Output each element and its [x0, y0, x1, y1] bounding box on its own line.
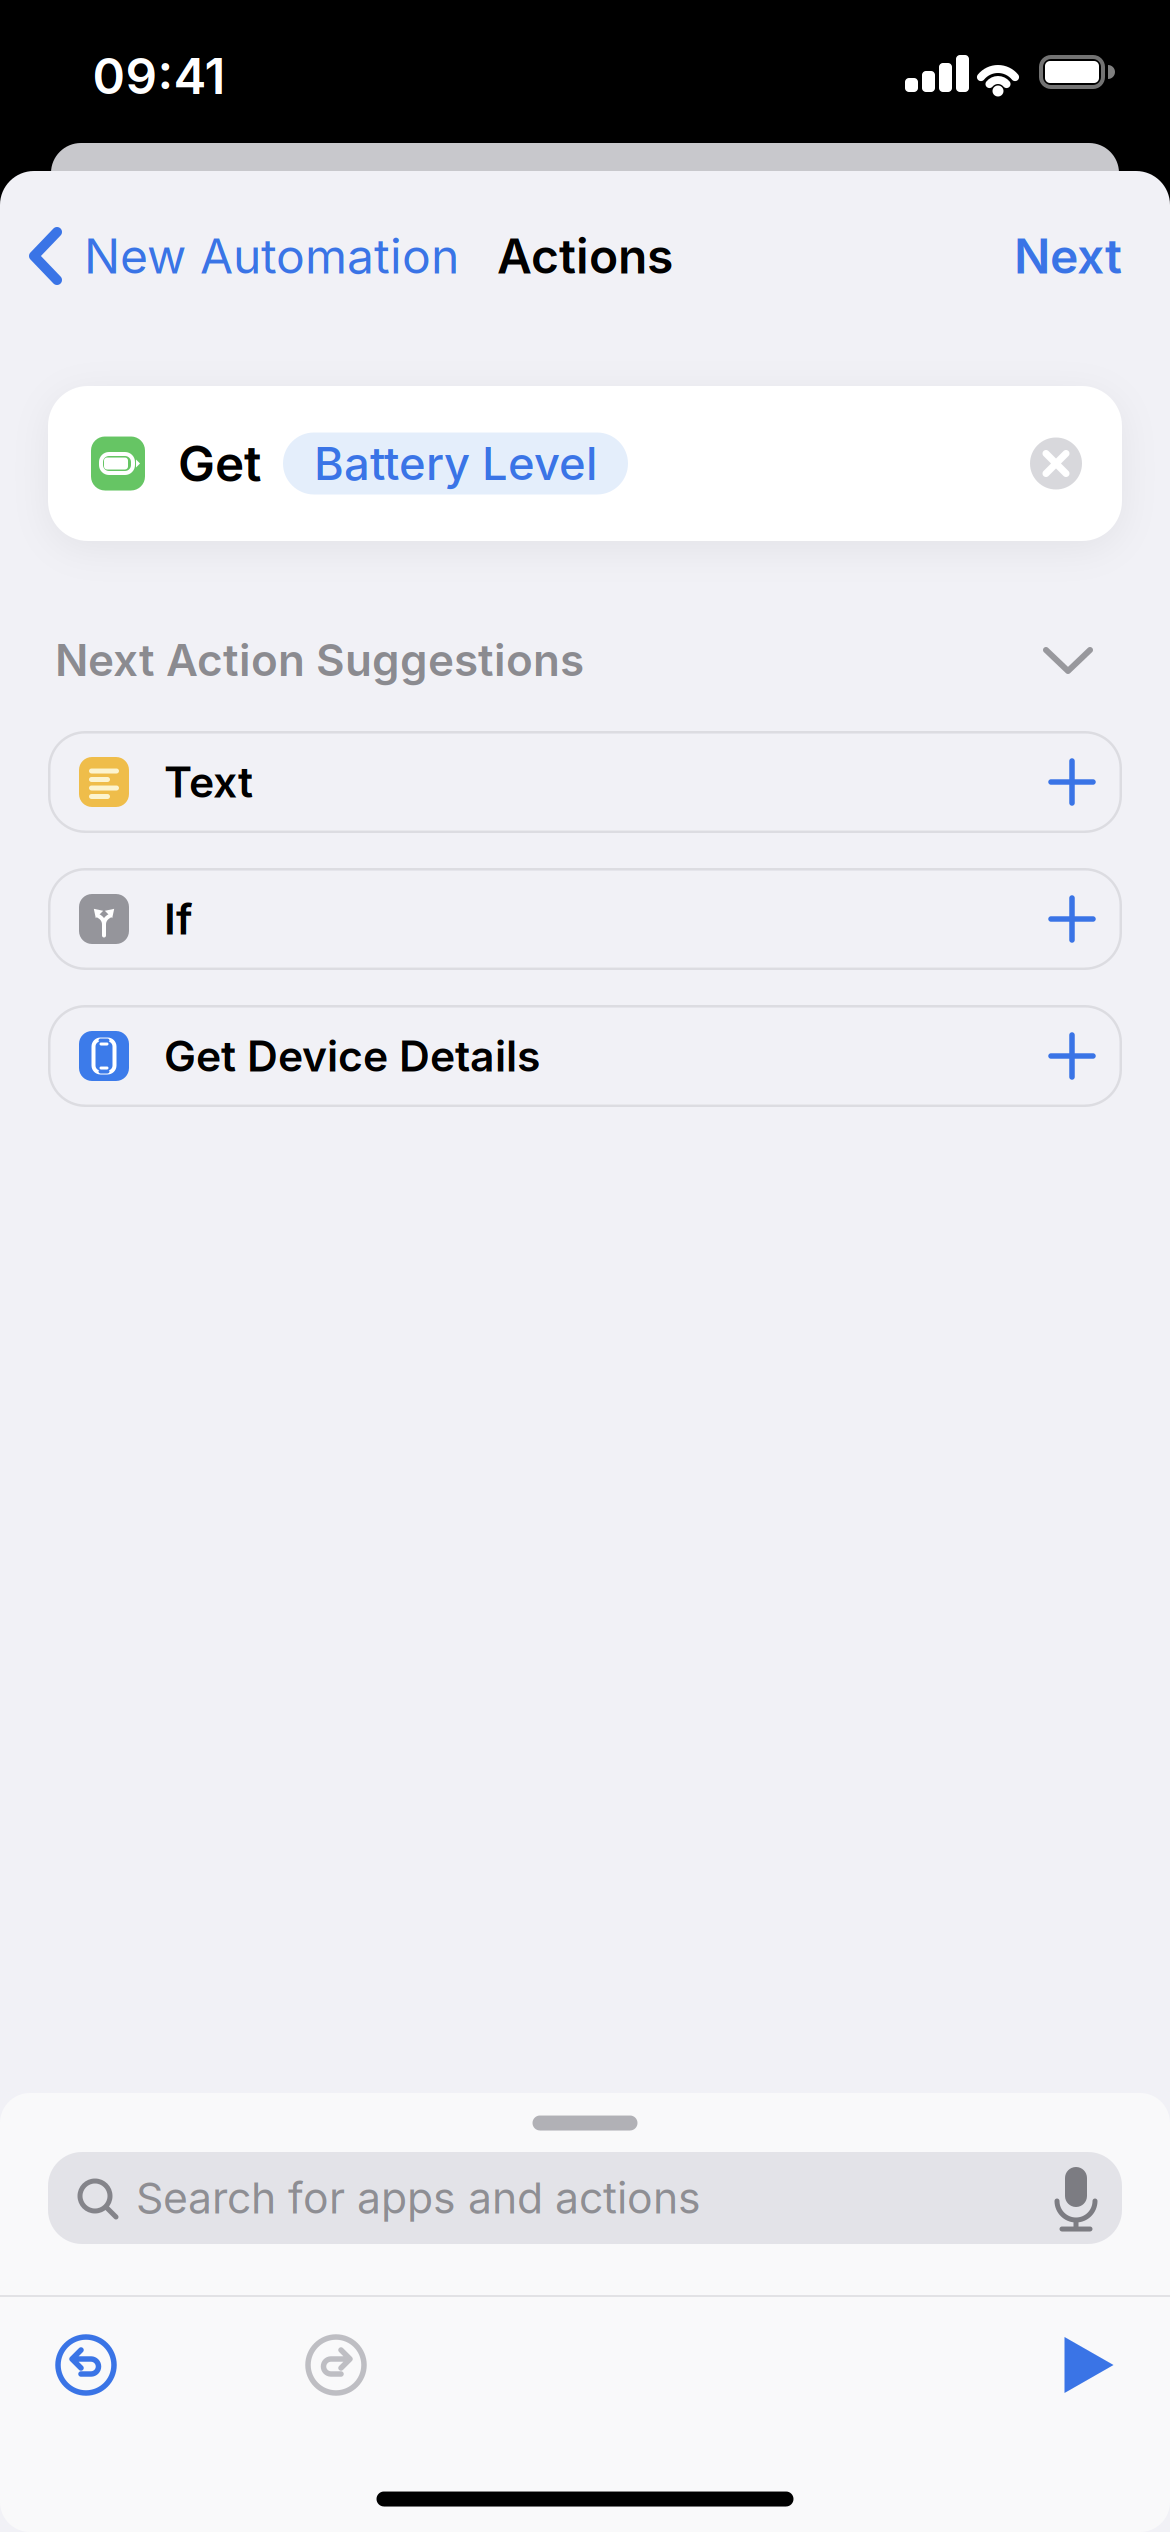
button[interactable]: Redo	[305, 2334, 367, 2396]
staticText: Text	[164, 756, 253, 808]
staticText: New Automation	[84, 227, 459, 285]
button[interactable]: Voice search	[1050, 2165, 1102, 2231]
staticText: Get Device Details	[164, 1030, 540, 1082]
button[interactable]: Get Device Details	[48, 1005, 1122, 1107]
button[interactable]: Undo	[55, 2334, 117, 2396]
staticText: Next Action Suggestions	[55, 633, 584, 687]
button[interactable]: Text	[48, 731, 1122, 833]
button[interactable]: Search for apps and actions	[48, 2152, 1122, 2244]
button[interactable]: Remove action	[1030, 437, 1082, 489]
staticText: Battery Level	[314, 436, 597, 491]
staticText: Get	[178, 434, 261, 493]
button[interactable]: Collapse suggestions	[1043, 646, 1093, 676]
staticText: If	[164, 893, 193, 945]
staticText: Actions	[497, 227, 673, 285]
staticText: 09:41	[92, 46, 225, 106]
button[interactable]: Next	[1014, 227, 1122, 285]
staticText: Search for apps and actions	[136, 2172, 701, 2224]
button[interactable]: Battery Level	[283, 432, 628, 494]
staticText: Next	[1014, 227, 1122, 285]
button[interactable]: If	[48, 868, 1122, 970]
button[interactable]: Run	[1062, 2337, 1115, 2393]
button[interactable]: New Automation	[27, 227, 459, 285]
